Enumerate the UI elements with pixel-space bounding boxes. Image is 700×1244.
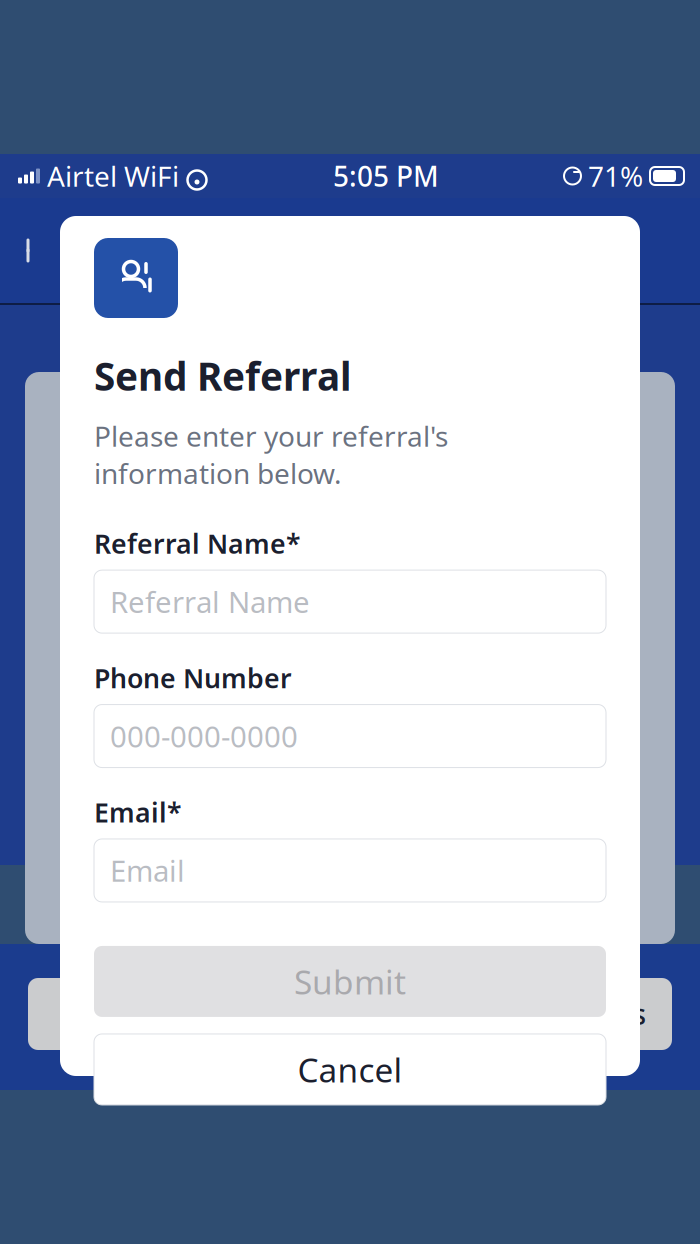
button[interactable]: Cancel — [94, 1034, 606, 1105]
button[interactable]: Submit — [94, 946, 606, 1017]
staticText: 000-000-0000 — [110, 717, 298, 756]
staticText: Phone Number — [94, 660, 292, 695]
staticText: Submit — [294, 959, 406, 1004]
button[interactable]: Send Referral — [28, 978, 340, 1050]
staticText: Cancel — [297, 1047, 402, 1092]
staticText: Email — [110, 851, 185, 890]
button[interactable]: Back — [0, 220, 56, 280]
staticText: Referral Name — [110, 582, 310, 621]
staticText: Airtel WiFi — [47, 157, 179, 195]
button[interactable]: Request Projects — [360, 978, 672, 1050]
staticText: Send Referral — [94, 350, 352, 401]
staticText: Send Referral — [112, 995, 292, 1033]
staticText: 71% — [588, 157, 643, 195]
staticText: Request Projects — [421, 995, 646, 1033]
staticText: 5:05 PM — [333, 157, 439, 195]
staticText: Please enter your referral's information… — [94, 417, 448, 492]
staticText: Email* — [94, 794, 182, 830]
staticText: Referral Name* — [94, 526, 301, 561]
